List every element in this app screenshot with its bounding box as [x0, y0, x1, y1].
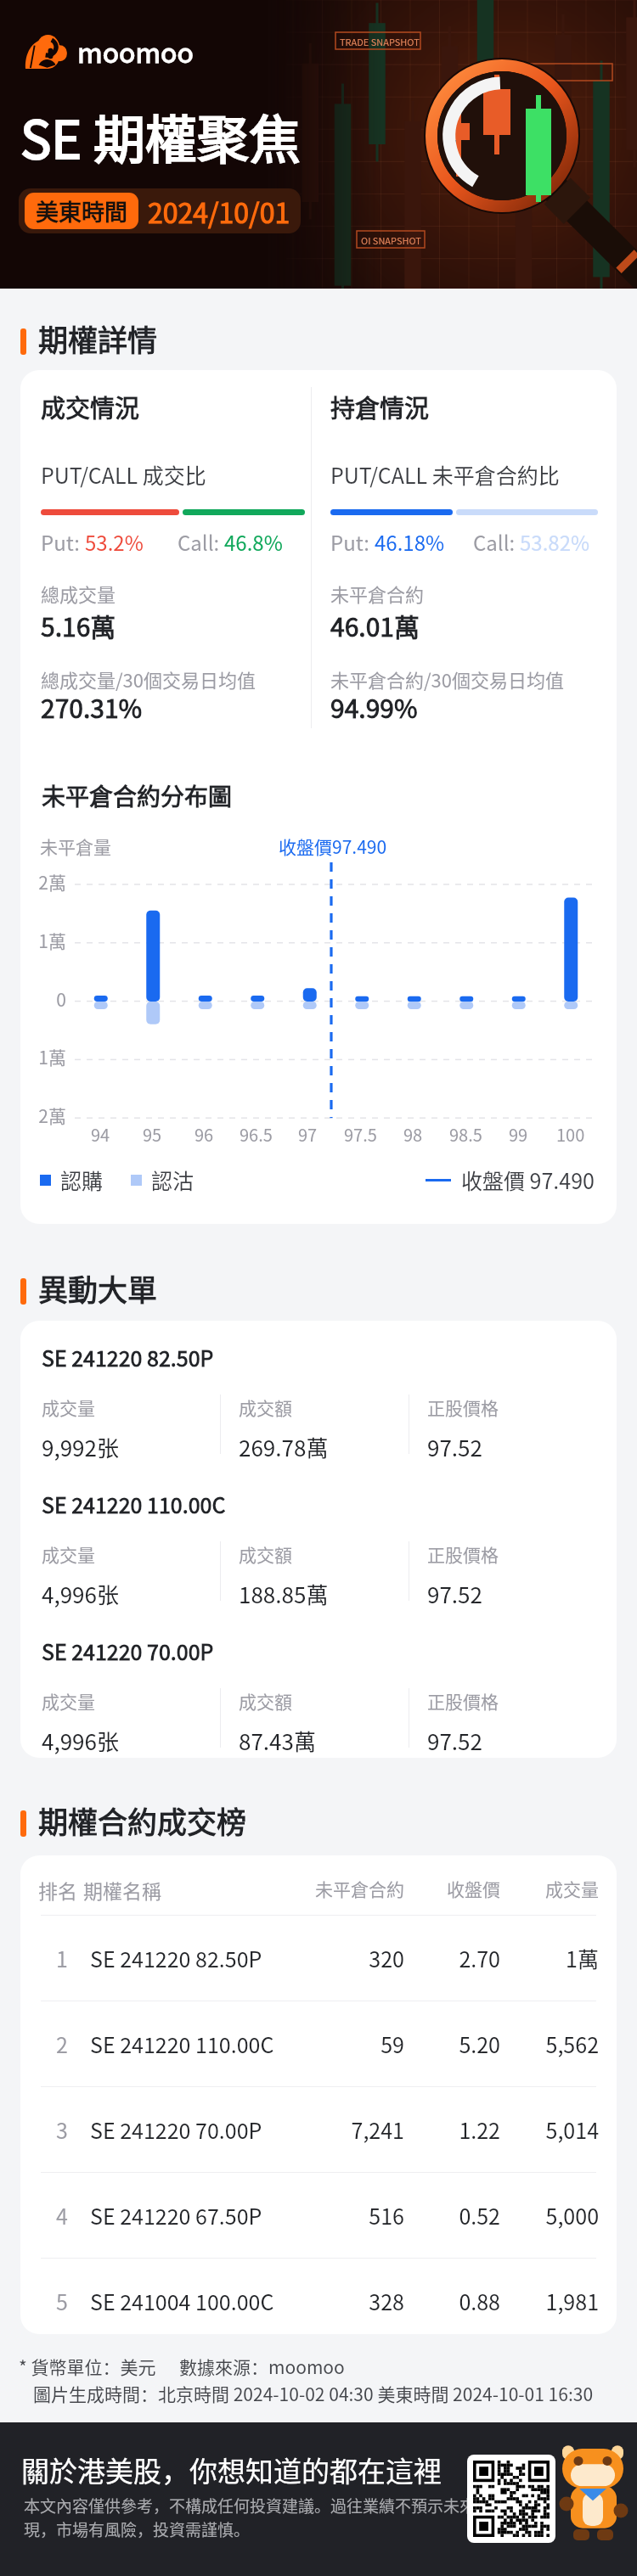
staticText: 4,996张: [42, 1725, 119, 1757]
staticText: 成交額: [239, 1688, 292, 1714]
staticText: 異動大單: [38, 1266, 158, 1310]
staticText: moomoo: [77, 31, 194, 70]
staticText: SE 241004 100.00C: [90, 2286, 274, 2316]
staticText: 收盤價97.490: [279, 833, 387, 859]
staticText: 認沽: [151, 1165, 194, 1195]
button[interactable]: 美東時間: [19, 188, 301, 233]
staticText: 95: [143, 1122, 162, 1147]
staticText: 2.70: [20, 1943, 500, 1973]
staticText: 正股價格: [427, 1395, 499, 1420]
staticText: TRADE SNAPSHOT: [340, 35, 420, 48]
staticText: Put:: [41, 527, 85, 557]
staticText: 97.52: [427, 1578, 482, 1610]
staticText: 期權名稱: [83, 1876, 161, 1904]
staticText: 總成交量/30個交易日均值: [41, 665, 256, 693]
staticText: 認購: [60, 1165, 104, 1195]
staticText: 53.2%: [85, 527, 144, 557]
staticText: 46.18%: [375, 527, 445, 557]
staticText: 328: [20, 2286, 404, 2316]
staticText: 46.01萬: [330, 607, 420, 643]
button[interactable]: 4: [20, 2173, 617, 2258]
staticText: 成交量: [42, 1688, 95, 1714]
staticText: 圖片生成時間：北京時間 2024-10-02 04:30 美東時間 2024-1…: [33, 2381, 594, 2406]
staticText: 270.31%: [41, 688, 143, 725]
staticText: 成交情況: [41, 389, 140, 424]
staticText: 3: [56, 2114, 68, 2145]
button[interactable]: 1: [20, 1916, 617, 2001]
button[interactable]: SE 241220 82.50P: [20, 1337, 617, 1472]
staticText: 1: [56, 1943, 68, 1973]
staticText: 99: [509, 1122, 528, 1147]
staticText: 53.82%: [520, 527, 590, 557]
staticText: 未平倉合約/30個交易日均值: [330, 665, 565, 693]
button[interactable]: 5: [20, 2259, 617, 2334]
staticText: 期權合約成交榜: [38, 1799, 247, 1842]
staticText: 關於港美股，你想知道的都在這裡: [21, 2450, 442, 2490]
staticText: 1萬: [20, 1943, 599, 1973]
staticText: 1萬: [20, 1044, 66, 1069]
staticText: 98.5: [449, 1122, 482, 1147]
button[interactable]: QR code: [467, 2455, 555, 2543]
staticText: 96.5: [240, 1122, 273, 1147]
staticText: 94: [91, 1122, 110, 1147]
staticText: 5.20: [20, 2029, 500, 2059]
staticText: 未平倉合約: [330, 580, 425, 607]
staticText: SE 241220 82.50P: [90, 1943, 262, 1973]
staticText: 正股價格: [427, 1688, 499, 1714]
button[interactable]: 2: [20, 2001, 617, 2086]
staticText: 97.52: [427, 1725, 482, 1757]
staticText: 成交量: [42, 1541, 95, 1567]
staticText: 46.8%: [224, 527, 283, 557]
staticText: 成交量: [42, 1395, 95, 1420]
staticText: 期權詳情: [38, 317, 158, 360]
staticText: 2: [56, 2029, 68, 2059]
staticText: 1.22: [20, 2114, 500, 2145]
staticText: 4,996张: [42, 1578, 119, 1610]
staticText: 5,014: [20, 2114, 599, 2145]
staticText: 188.85萬: [239, 1578, 329, 1610]
staticText: SE 241220 110.00C: [90, 2029, 274, 2059]
staticText: 未平倉量: [40, 833, 111, 859]
staticText: 收盤價 97.490: [461, 1165, 595, 1195]
staticText: SE 241220 70.00P: [90, 2114, 262, 2145]
staticText: 本文內容僅供參考，不構成任何投資建議。過往業績不預示未來表: [24, 2494, 493, 2517]
button[interactable]: 3: [20, 2087, 617, 2172]
staticText: 2萬: [20, 869, 66, 895]
staticText: 總成交量: [41, 580, 116, 607]
staticText: 1,981: [20, 2286, 599, 2316]
staticText: 5: [56, 2286, 68, 2316]
staticText: PUT/CALL 成交比: [41, 459, 206, 490]
staticText: 516: [20, 2200, 404, 2231]
staticText: 5,000: [20, 2200, 599, 2231]
staticText: 100: [556, 1122, 585, 1147]
staticText: 5,562: [20, 2029, 599, 2059]
staticText: 成交量: [20, 1876, 599, 1901]
staticText: 0.52: [20, 2200, 500, 2231]
staticText: 4: [56, 2200, 68, 2231]
staticText: 排名: [38, 1876, 77, 1904]
staticText: 持倉情況: [330, 389, 430, 424]
staticText: 未平倉合約: [20, 1876, 404, 1901]
staticText: SE 241220 70.00P: [42, 1636, 214, 1666]
button[interactable]: SE 241220 110.00C: [20, 1484, 617, 1619]
staticText: PUT/CALL 未平倉合約比: [330, 459, 560, 490]
staticText: 0.88: [20, 2286, 500, 2316]
staticText: 87.43萬: [239, 1725, 316, 1757]
staticText: 美東時間: [36, 194, 127, 227]
staticText: 2024/10/01: [148, 192, 290, 231]
staticText: 1萬: [20, 928, 66, 953]
staticText: 96: [194, 1122, 214, 1147]
staticText: 94.99%: [330, 688, 418, 725]
staticText: 正股價格: [427, 1541, 499, 1567]
staticText: SE 241220 110.00C: [42, 1489, 226, 1519]
staticText: SE 241220 67.50P: [90, 2200, 262, 2231]
staticText: 98: [403, 1122, 423, 1147]
staticText: 數據來源：moomoo: [179, 2354, 345, 2379]
staticText: 現，市場有風險，投資需謹慎。: [24, 2517, 251, 2541]
staticText: 收盤價: [20, 1876, 500, 1901]
staticText: 成交額: [239, 1541, 292, 1567]
staticText: Put:: [330, 527, 375, 557]
staticText: 320: [20, 1943, 404, 1973]
staticText: 269.78萬: [239, 1431, 329, 1463]
button[interactable]: SE 241220 70.00P: [20, 1630, 617, 1758]
